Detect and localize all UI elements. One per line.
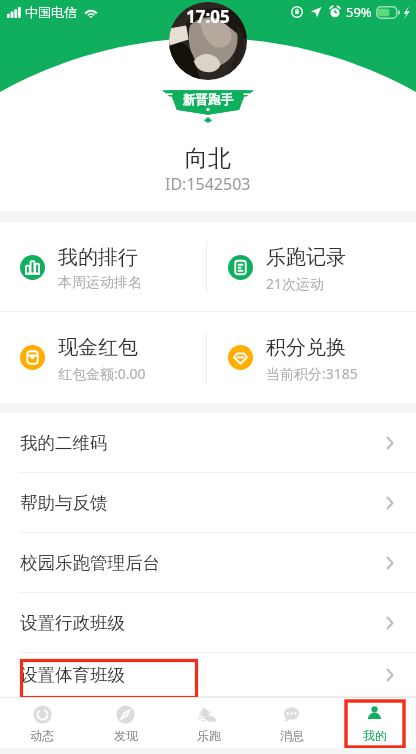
button[interactable]: 积分兑换	[208, 312, 416, 403]
staticText: 我的	[363, 728, 387, 743]
button[interactable]: 我的排行	[0, 222, 208, 311]
staticText: 设置体育班级	[20, 664, 125, 686]
staticText: 17:05	[186, 5, 230, 28]
button[interactable]: 我的二维码	[0, 413, 416, 473]
button[interactable]: 乐跑	[167, 698, 250, 748]
staticText: ID:1542503	[165, 173, 251, 195]
staticText: 校园乐跑管理后台	[20, 552, 160, 574]
staticText: 21次运动	[266, 274, 325, 293]
button[interactable]: 乐跑记录	[208, 222, 416, 311]
staticText: 乐跑记录	[266, 245, 346, 270]
staticText: 我的排行	[58, 245, 138, 270]
button[interactable]: 设置体育班级	[0, 653, 416, 697]
staticText: 59%	[346, 3, 372, 21]
staticText: 积分兑换	[266, 335, 346, 360]
button[interactable]: 我的	[333, 698, 416, 748]
staticText: 本周运动排名	[58, 274, 142, 292]
staticText: 向北	[185, 144, 231, 173]
staticText: 当前积分:3185	[266, 364, 358, 383]
button[interactable]: 帮助与反馈	[0, 473, 416, 533]
staticText: 乐跑	[197, 728, 221, 743]
staticText: 发现	[114, 728, 138, 743]
staticText: 新晋跑手	[183, 92, 233, 108]
button[interactable]: 消息	[250, 698, 333, 748]
staticText: 设置行政班级	[20, 612, 125, 634]
staticText: 动态	[30, 728, 54, 743]
staticText: 我的二维码	[20, 432, 108, 454]
staticText: 帮助与反馈	[20, 492, 108, 514]
button[interactable]: 现金红包	[0, 312, 208, 403]
staticText: 中国电信	[25, 4, 77, 20]
button[interactable]: 发现	[84, 698, 167, 748]
staticText: 现金红包	[58, 335, 138, 360]
staticText: 消息	[280, 728, 304, 743]
button[interactable]: 校园乐跑管理后台	[0, 533, 416, 593]
button[interactable]: 设置行政班级	[0, 593, 416, 653]
staticText: 红包金额:0.00	[58, 364, 146, 383]
button[interactable]: 动态	[0, 698, 84, 748]
